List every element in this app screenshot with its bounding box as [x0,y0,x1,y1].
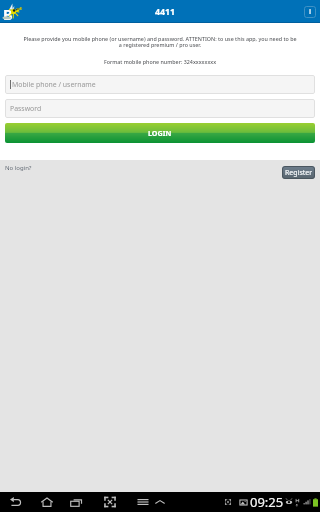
staticText: i [309,7,312,17]
staticText: LOGIN [148,128,172,138]
button[interactable]: Back [8,494,24,510]
staticText: 4411 [155,6,176,18]
button[interactable]: Home [39,494,55,510]
staticText: Password [10,104,42,113]
button[interactable]: Screenshot [102,494,118,510]
staticText: Format mobile phone number: 324xxxxxxxx [0,58,320,65]
staticText: Please provide you mobile phone (or user… [23,35,297,49]
staticText: Register [285,168,313,178]
button[interactable]: Password [5,99,315,118]
button[interactable]: Menu [135,494,151,510]
button[interactable]: Recent apps [68,494,84,510]
staticText: No login? [5,164,32,172]
staticText: Mobile phone / username [12,80,96,89]
button[interactable]: LOGIN [5,123,315,143]
staticText: B [3,4,13,24]
staticText: 09:25 [250,493,284,511]
button[interactable]: Register [282,166,315,179]
button[interactable]: Expand status bar [152,494,168,510]
button[interactable]: Mobile phone / username [5,75,315,94]
button[interactable]: Info [304,6,316,18]
